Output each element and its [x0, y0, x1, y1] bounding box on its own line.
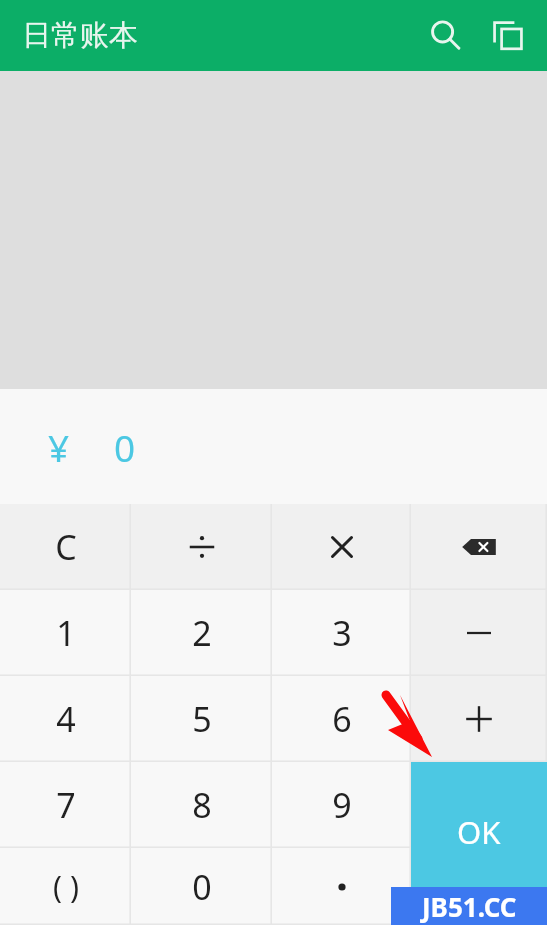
button[interactable]: Backspace: [411, 504, 547, 590]
button[interactable]: 3: [272, 590, 411, 676]
button[interactable]: 7: [0, 762, 131, 848]
staticText: 1: [56, 610, 76, 656]
button[interactable]: [272, 848, 411, 925]
staticText: 7: [56, 782, 76, 828]
button[interactable]: [411, 590, 547, 676]
staticText: 5: [192, 696, 212, 742]
button[interactable]: [411, 676, 547, 762]
staticText: 0: [114, 422, 136, 472]
staticText: 6: [332, 696, 352, 742]
staticText: ¥: [48, 422, 70, 472]
staticText: ( ): [53, 866, 79, 907]
button[interactable]: 2: [131, 590, 272, 676]
button[interactable]: Switch book: [477, 5, 539, 67]
button[interactable]: 6: [272, 676, 411, 762]
staticText: OK: [457, 811, 501, 853]
staticText: 9: [332, 782, 352, 828]
staticText: 0: [192, 864, 212, 910]
staticText: JB51.CC: [422, 889, 517, 924]
button[interactable]: C: [0, 504, 131, 590]
button[interactable]: 5: [131, 676, 272, 762]
staticText: 2: [192, 610, 212, 656]
staticText: 8: [192, 782, 212, 828]
button[interactable]: 4: [0, 676, 131, 762]
button[interactable]: [131, 504, 272, 590]
staticText: 3: [332, 610, 352, 656]
button[interactable]: ( ): [0, 848, 131, 925]
button[interactable]: 8: [131, 762, 272, 848]
button[interactable]: 0: [131, 848, 272, 925]
staticText: 4: [56, 696, 76, 742]
staticText: 日常账本: [22, 17, 138, 54]
button[interactable]: OK: [411, 762, 547, 925]
button[interactable]: 9: [272, 762, 411, 848]
button[interactable]: 1: [0, 590, 131, 676]
staticText: C: [55, 524, 77, 570]
button[interactable]: Search: [415, 5, 477, 67]
button[interactable]: [272, 504, 411, 590]
